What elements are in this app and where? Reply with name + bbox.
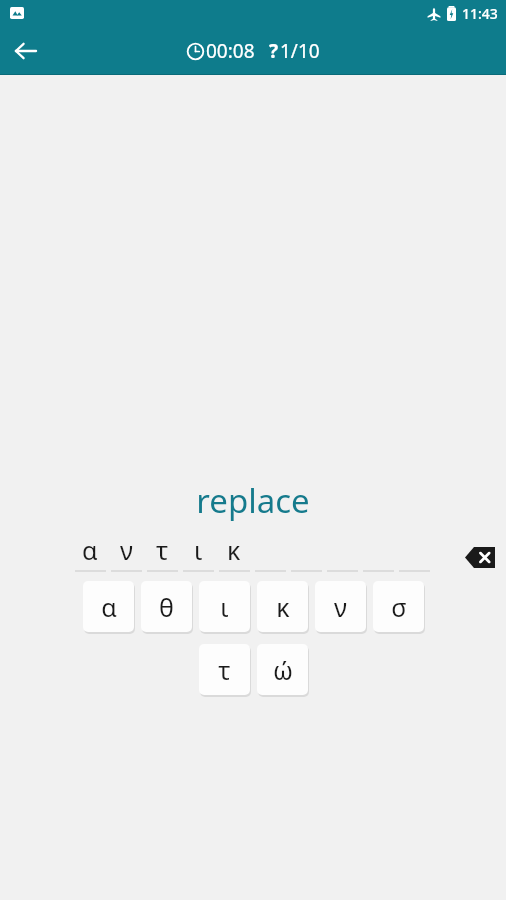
button[interactable]: κ: [257, 581, 308, 632]
staticText: θ: [159, 590, 174, 624]
button[interactable]: Back: [6, 31, 46, 71]
button[interactable]: τ: [199, 644, 250, 695]
staticText: 11:43: [462, 4, 498, 23]
staticText: ν: [120, 533, 133, 567]
button[interactable]: σ: [373, 581, 424, 632]
staticText: ν: [334, 590, 347, 624]
staticText: κ: [227, 533, 241, 567]
staticText: σ: [391, 590, 407, 624]
button[interactable]: ν: [315, 581, 366, 632]
staticText: 1/10: [280, 38, 320, 64]
button[interactable]: ώ: [257, 644, 308, 695]
staticText: ι: [194, 533, 203, 567]
button[interactable]: Backspace: [460, 537, 500, 577]
staticText: ι: [220, 590, 229, 624]
staticText: ώ: [273, 653, 293, 687]
staticText: τ: [156, 533, 169, 567]
button[interactable]: α: [83, 581, 134, 632]
staticText: replace: [196, 478, 310, 523]
button[interactable]: θ: [141, 581, 192, 632]
staticText: ?: [269, 38, 279, 64]
staticText: 00:08: [206, 38, 255, 64]
staticText: α: [82, 533, 98, 567]
button[interactable]: ι: [199, 581, 250, 632]
staticText: α: [101, 590, 117, 624]
staticText: τ: [218, 653, 231, 687]
staticText: κ: [276, 590, 290, 624]
